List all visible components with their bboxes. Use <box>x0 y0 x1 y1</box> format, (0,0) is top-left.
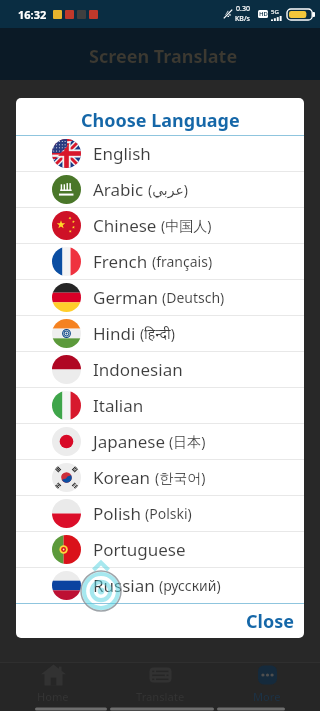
staticText: Translate <box>136 689 185 704</box>
staticText: (日本) <box>169 432 206 451</box>
button[interactable]: English <box>16 136 304 171</box>
staticText: HD <box>259 10 268 18</box>
staticText: German <box>93 286 158 309</box>
staticText: Hindi <box>93 322 136 345</box>
staticText: (عربي) <box>148 180 189 199</box>
button[interactable]: Close <box>236 604 304 638</box>
staticText: Choose Language <box>81 108 240 133</box>
staticText: Indonesian <box>93 358 183 381</box>
staticText: Italian <box>93 394 144 417</box>
button[interactable]: Arabic <box>16 172 304 207</box>
staticText: Korean <box>93 466 151 489</box>
staticText: Polish <box>93 502 141 525</box>
staticText: (français) <box>152 252 213 271</box>
staticText: Arabic <box>93 178 144 201</box>
staticText: Portuguese <box>93 538 186 561</box>
button[interactable]: Chinese <box>16 208 304 243</box>
button[interactable]: German <box>16 280 304 315</box>
button[interactable]: Hindi <box>16 316 304 351</box>
staticText: More <box>253 689 281 704</box>
staticText: Russian <box>93 574 155 597</box>
button[interactable]: More <box>214 663 320 705</box>
staticText: KB/s <box>235 14 250 24</box>
staticText: (中国人) <box>161 216 212 235</box>
staticText: 16:32 <box>18 7 47 22</box>
staticText: Screen Translate <box>89 44 238 69</box>
button[interactable]: Korean <box>16 460 304 495</box>
staticText: Home <box>37 689 69 704</box>
staticText: (हिन्दी) <box>140 324 175 343</box>
button[interactable]: Polish <box>16 496 304 531</box>
button[interactable]: Portuguese <box>16 532 304 567</box>
staticText: English <box>93 142 151 165</box>
staticText: Chinese <box>93 214 157 237</box>
staticText: French <box>93 250 148 273</box>
button[interactable]: Home <box>0 663 106 705</box>
staticText: Close <box>246 609 294 633</box>
staticText: (Deutsch) <box>162 288 225 307</box>
button[interactable]: French <box>16 244 304 279</box>
staticText: (русский) <box>159 576 221 595</box>
button[interactable]: Japanese <box>16 424 304 459</box>
button[interactable]: Italian <box>16 388 304 423</box>
button[interactable]: Indonesian <box>16 352 304 387</box>
staticText: (Polski) <box>145 504 192 523</box>
staticText: (한국어) <box>155 468 206 487</box>
staticText: 0.30 <box>236 4 250 14</box>
staticText: 5G <box>271 8 279 16</box>
button[interactable]: Russian <box>16 568 304 603</box>
staticText: Japanese <box>93 430 165 453</box>
